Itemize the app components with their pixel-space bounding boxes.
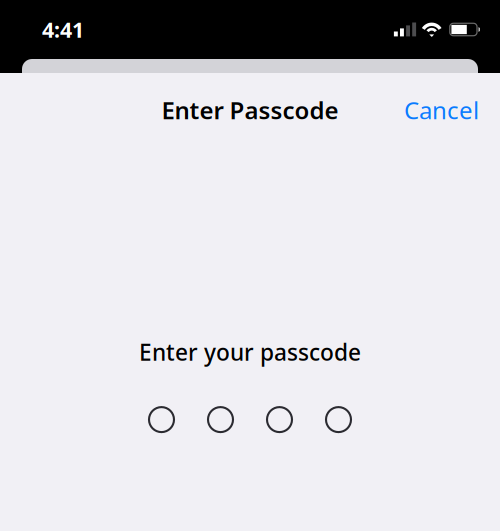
button[interactable]: Passcode field, 4 digits <box>139 401 361 438</box>
staticText: Enter your passcode <box>139 337 361 367</box>
staticText: Cancel <box>404 94 479 126</box>
staticText: 4:41 <box>42 15 84 44</box>
button[interactable]: Cancel <box>400 88 483 132</box>
staticText: Enter Passcode <box>161 94 338 126</box>
